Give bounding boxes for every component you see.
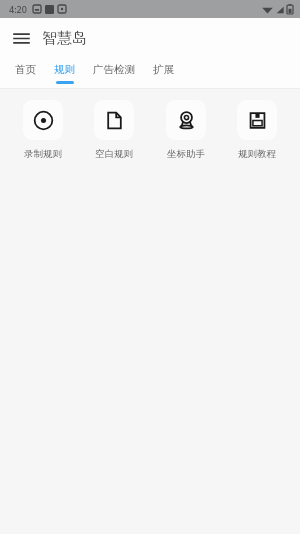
staticText: 录制规则 [24, 148, 62, 160]
staticText: 首页 [15, 63, 36, 76]
button[interactable]: 规则教程 [228, 100, 286, 160]
staticText: 规则教程 [238, 148, 276, 160]
button[interactable]: 广告检测 [84, 58, 144, 88]
button[interactable]: 首页 [6, 58, 45, 88]
button[interactable]: 坐标助手 [157, 100, 215, 160]
button[interactable]: 规则 [45, 58, 84, 88]
staticText: 广告检测 [93, 63, 135, 76]
staticText: 空白规则 [95, 148, 133, 160]
staticText: 智慧岛 [42, 29, 87, 48]
button[interactable]: 扩展 [144, 58, 183, 88]
staticText: 坐标助手 [167, 148, 205, 160]
staticText: 4:20 [9, 3, 27, 15]
button[interactable]: 录制规则 [14, 100, 72, 160]
staticText: 规则 [54, 63, 75, 76]
button[interactable]: Open navigation menu [8, 25, 34, 51]
button[interactable]: 空白规则 [85, 100, 143, 160]
staticText: 扩展 [153, 63, 174, 76]
